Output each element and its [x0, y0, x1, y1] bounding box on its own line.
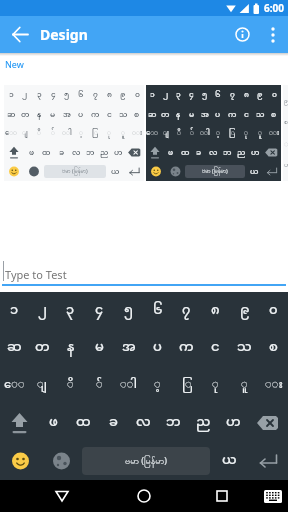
- staticText: ၀: [269, 297, 278, 325]
- staticText: ◌့: [79, 126, 83, 141]
- staticText: ၅: [64, 87, 70, 103]
- staticText: တ: [21, 107, 30, 123]
- staticText: ◌်: [190, 126, 194, 141]
- button[interactable]: [55, 489, 69, 503]
- staticText: New: [5, 58, 24, 70]
- staticText: က: [91, 107, 100, 123]
- staticText: ◌ျ: [22, 126, 28, 141]
- staticText: ဟ: [284, 160, 288, 170]
- staticText: ◌ြ: [229, 126, 235, 141]
- button[interactable]: Type to Test: [0, 256, 288, 282]
- staticText: ဖ: [168, 145, 174, 161]
- staticText: ၉: [240, 297, 250, 325]
- staticText: ၀: [135, 87, 140, 103]
- staticText: စ: [134, 107, 140, 123]
- staticText: ◌ူ: [258, 126, 262, 141]
- staticText: 6:00: [264, 1, 284, 15]
- staticText: ◌်: [51, 126, 55, 141]
- staticText: ဗမာ (မြန်မာ): [202, 167, 228, 176]
- staticText: ◌ု: [107, 126, 111, 141]
- button[interactable]: [4, 162, 24, 181]
- button[interactable]: ဗမာ (မြန်မာ): [82, 447, 210, 475]
- button[interactable]: ယ: [245, 162, 263, 181]
- staticText: န: [176, 107, 181, 123]
- button[interactable]: [146, 162, 166, 181]
- staticText: အ: [63, 107, 71, 123]
- staticText: ပ: [78, 107, 84, 123]
- staticText: ◌း: [269, 126, 280, 141]
- staticText: ၄: [51, 87, 56, 103]
- staticText: ◌ါ: [120, 373, 137, 398]
- button[interactable]: [0, 16, 40, 53]
- staticText: ◌ါ: [200, 126, 210, 141]
- button[interactable]: ဗမာ (မြန်မာ): [185, 165, 245, 178]
- staticText: ၇: [230, 87, 235, 103]
- staticText: ၃: [66, 297, 75, 325]
- staticText: င: [107, 107, 112, 123]
- staticText: ၈: [244, 87, 249, 103]
- staticText: စ: [284, 117, 288, 127]
- staticText: န: [37, 107, 42, 123]
- button[interactable]: ၁: [4, 85, 144, 181]
- staticText: ◌ြ: [182, 373, 192, 398]
- button[interactable]: ယ: [106, 162, 125, 181]
- staticText: ၃: [37, 87, 42, 103]
- button[interactable]: [226, 16, 258, 53]
- staticText: ၁: [9, 87, 14, 103]
- staticText: ◌့: [154, 373, 161, 398]
- staticText: ခ: [196, 145, 202, 161]
- button[interactable]: [125, 162, 144, 181]
- button[interactable]: [264, 490, 282, 503]
- button[interactable]: ၁: [146, 85, 281, 181]
- staticText: ဆ: [7, 334, 22, 362]
- staticText: မ: [50, 107, 56, 123]
- staticText: ◌ါ: [62, 126, 72, 141]
- button[interactable]: [137, 489, 151, 503]
- staticText: ◌ု: [212, 373, 219, 398]
- button[interactable]: ဗမာ (မြန်မာ): [44, 165, 106, 178]
- staticText: Type to Test: [5, 267, 67, 282]
- staticText: က: [179, 334, 194, 362]
- staticText: ◌်: [96, 373, 103, 398]
- staticText: ၂: [38, 297, 47, 325]
- staticText: ◌ိ: [67, 373, 74, 398]
- staticText: ဟ: [251, 145, 260, 161]
- staticText: တ: [161, 107, 170, 123]
- button[interactable]: [249, 442, 288, 480]
- button[interactable]: [0, 442, 41, 480]
- button[interactable]: [24, 162, 44, 181]
- staticText: ◌ျ: [163, 126, 169, 141]
- button[interactable]: [258, 16, 288, 53]
- staticText: ေ◌: [4, 373, 25, 398]
- button[interactable]: [166, 162, 185, 181]
- staticText: ◌ု: [244, 126, 248, 141]
- staticText: ◌ူ: [121, 126, 125, 141]
- staticText: ၅: [124, 297, 134, 325]
- staticText: Design: [40, 25, 88, 44]
- staticText: ◌ြ: [92, 126, 98, 141]
- staticText: ဘ: [86, 145, 95, 161]
- staticText: က: [228, 107, 237, 123]
- staticText: ဗမာ (မြန်မာ): [62, 167, 88, 176]
- staticText: ထ: [181, 145, 190, 161]
- staticText: သ: [119, 107, 128, 123]
- staticText: ၂: [22, 87, 28, 103]
- button[interactable]: [263, 162, 281, 181]
- staticText: ဗမာ (မြန်မာ): [125, 454, 167, 468]
- staticText: ၇: [93, 87, 98, 103]
- staticText: ဘ: [166, 409, 181, 437]
- staticText: ◌့: [216, 126, 220, 141]
- staticText: ၃: [176, 87, 181, 103]
- button[interactable]: [41, 442, 82, 480]
- staticText: ၄: [189, 87, 194, 103]
- staticText: ဘ: [223, 145, 232, 161]
- button[interactable]: [216, 490, 228, 502]
- staticText: ဖ: [29, 145, 35, 161]
- staticText: ◌ျ: [37, 373, 47, 398]
- staticText: ၉: [120, 87, 126, 103]
- button[interactable]: ယ: [210, 442, 249, 480]
- staticText: ည: [196, 409, 211, 437]
- staticText: စ: [271, 107, 277, 123]
- staticText: ၈: [107, 87, 112, 103]
- staticText: ၁: [10, 297, 19, 325]
